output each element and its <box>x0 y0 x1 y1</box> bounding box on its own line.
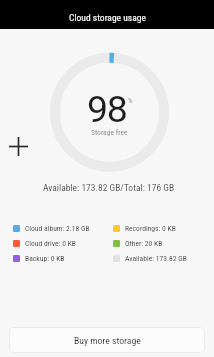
staticText: Other: 20 KB <box>125 239 163 247</box>
button[interactable]: Buy more storage <box>9 327 205 353</box>
staticText: Cloud storage usage <box>69 12 146 23</box>
staticText: Available: 173.82 GB/Total: 176 GB <box>43 182 175 193</box>
staticText: Recordings: 0 KB <box>125 224 176 232</box>
staticText: Cloud drive: 0 KB <box>25 239 76 247</box>
staticText: Available: 173.82 GB <box>125 254 187 262</box>
staticText: Buy more storage <box>74 335 141 346</box>
staticText: Cloud album: 2.18 GB <box>25 224 90 232</box>
staticText: % <box>128 97 133 105</box>
staticText: 98 <box>87 87 127 131</box>
staticText: Backup: 0 KB <box>25 254 65 262</box>
button[interactable]: Add storage <box>6 134 31 159</box>
staticText: Storage free <box>91 128 128 137</box>
